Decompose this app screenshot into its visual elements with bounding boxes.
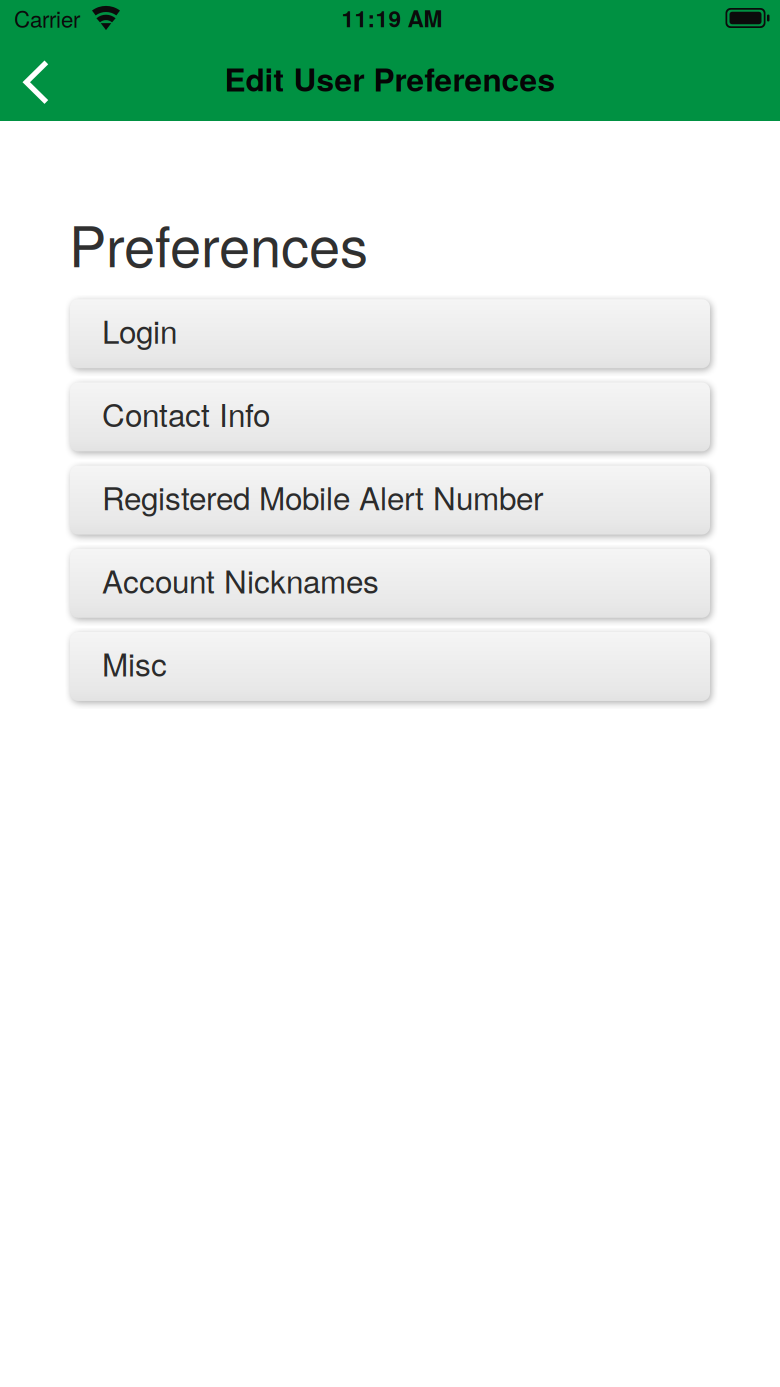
staticText: Misc — [102, 640, 167, 686]
staticText: 11:19 AM — [341, 2, 442, 34]
staticText: Contact Info — [102, 391, 270, 436]
button[interactable]: Contact Info — [70, 382, 710, 451]
staticText: Registered Mobile Alert Number — [102, 474, 543, 519]
button[interactable]: Back — [0, 36, 86, 121]
staticText: Edit User Preferences — [224, 56, 555, 101]
button[interactable]: Registered Mobile Alert Number — [70, 466, 710, 535]
staticText: Login — [102, 308, 177, 353]
button[interactable]: Login — [70, 299, 710, 368]
staticText: Preferences — [69, 203, 368, 283]
button[interactable]: Misc — [70, 632, 710, 701]
staticText: Carrier — [14, 2, 80, 34]
button[interactable]: Account Nicknames — [70, 549, 710, 618]
staticText: Account Nicknames — [102, 557, 379, 602]
